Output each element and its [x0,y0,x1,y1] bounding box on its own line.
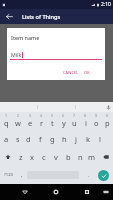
staticText: k [86,134,91,144]
staticText: e [28,118,33,128]
staticText: a [4,134,9,144]
staticText: 9 [95,113,98,118]
staticText: u [72,118,77,128]
staticText: b [66,152,71,162]
button[interactable]: b [62,148,74,166]
button[interactable]: c [38,148,50,166]
staticText: m [88,152,96,162]
button[interactable]: Backspace [98,148,113,166]
button[interactable]: 2 [12,112,24,130]
staticText: 4 [40,113,43,118]
button[interactable]: 5 [47,112,58,130]
button[interactable]: d [23,130,34,148]
staticText: z [19,152,23,162]
staticText: n [78,152,83,162]
staticText: r [40,118,44,128]
button[interactable]: g [46,130,58,148]
staticText: 1 [5,113,8,118]
button[interactable]: x [26,148,38,166]
staticText: 2 [17,113,20,118]
button[interactable]: Recent apps [79,184,95,200]
staticText: j [75,134,77,144]
staticText: w [15,118,21,128]
button[interactable]: 8 [80,112,91,130]
staticText: . [88,171,90,179]
staticText: 2:10 [101,1,111,8]
staticText: q [4,118,9,128]
button[interactable]: s [12,130,23,148]
staticText: 8 [84,113,87,118]
staticText: 5 [51,113,54,118]
staticText: x [30,152,34,162]
button[interactable]: OK [81,67,93,78]
button[interactable]: Hide keyboard [98,184,113,200]
staticText: p [105,118,110,128]
button[interactable]: l [94,130,106,148]
staticText: f [39,134,42,144]
staticText: Milk [11,51,22,58]
staticText: 0 [106,113,109,118]
button[interactable]: 9 [91,112,102,130]
staticText: v [54,152,58,162]
button[interactable]: CANCEL [60,67,82,78]
staticText: i [85,118,87,128]
staticText: , [21,171,23,179]
button[interactable]: . [84,166,94,184]
button[interactable]: a [1,130,12,148]
staticText: y [62,118,66,128]
staticText: d [26,134,31,144]
staticText: Item name [11,34,40,41]
button[interactable] [76,102,113,112]
staticText: ?123 [4,172,14,178]
staticText: 3 [29,113,32,118]
button[interactable]: , [17,166,27,184]
staticText: 6 [62,113,65,118]
button[interactable]: h [58,130,70,148]
button[interactable]: Enter [94,166,113,184]
button[interactable]: Back [17,184,33,200]
staticText: h [62,134,67,144]
button[interactable]: j [70,130,82,148]
button[interactable]: 7 [69,112,80,130]
button[interactable]: 6 [58,112,69,130]
button[interactable]: Voice input [103,102,113,112]
button[interactable]: Navigate up [3,10,16,23]
staticText: s [16,134,20,144]
staticText: CANCEL [63,70,79,75]
staticText: t [51,118,54,128]
button[interactable]: 1 [0,112,12,130]
button[interactable]: m [86,148,98,166]
button[interactable]: Home [48,184,64,200]
button[interactable]: v [50,148,62,166]
staticText: 7 [73,113,76,118]
staticText: Lists of Things [22,13,61,21]
staticText: OK [84,70,90,75]
button[interactable]: k [82,130,94,148]
button[interactable]: Shift [0,148,15,166]
staticText: c [42,152,46,162]
button[interactable]: n [74,148,86,166]
button[interactable]: ?123 [0,166,17,184]
staticText: l [99,134,101,144]
button[interactable]: 3 [24,112,36,130]
button[interactable]: f [34,130,46,148]
button[interactable]: 4 [36,112,47,130]
staticText: g [50,134,55,144]
button[interactable]: z [15,148,26,166]
staticText: o [94,118,99,128]
button[interactable]: 0 [102,112,113,130]
